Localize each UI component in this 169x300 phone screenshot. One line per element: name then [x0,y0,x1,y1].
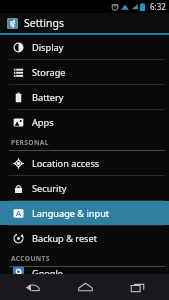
staticText: Settings [24,16,64,30]
button[interactable]: Storage [0,60,169,84]
button[interactable]: Back [12,274,52,300]
button[interactable]: Home [65,274,105,300]
staticText: Google [32,267,64,274]
button[interactable]: Display [0,35,169,59]
staticText: Display [32,41,64,54]
button[interactable]: Location access [0,151,169,175]
staticText: Apps [32,116,54,129]
staticText: ACCOUNTS [11,254,50,263]
staticText: 6:32 [150,1,166,12]
staticText: Battery [32,91,64,104]
button[interactable]: Recent apps [117,274,157,300]
staticText: Storage [32,66,66,79]
staticText: Location access [32,157,100,170]
staticText: Security [32,182,67,195]
staticText: Language & input [32,207,110,220]
button[interactable]: Backup & reset [0,226,169,250]
button[interactable]: Security [0,176,169,200]
staticText: PERSONAL [11,138,49,147]
button[interactable]: Google [0,267,169,274]
staticText: Backup & reset [32,232,97,245]
button[interactable]: Battery [0,85,169,109]
button[interactable]: Language & input [0,201,169,225]
button[interactable]: Settings [0,13,169,33]
button[interactable]: Apps [0,110,169,134]
